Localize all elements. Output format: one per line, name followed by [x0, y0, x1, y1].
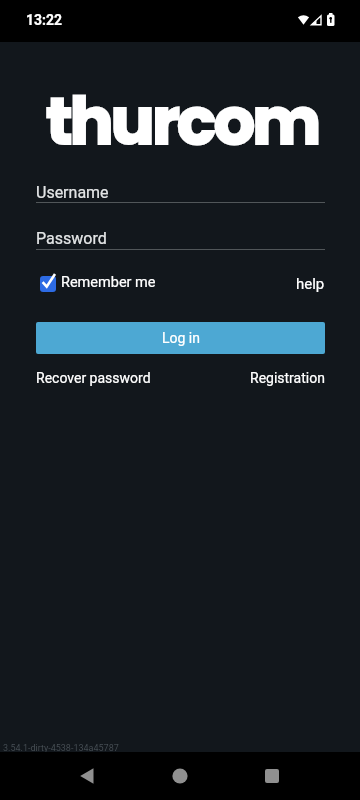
button[interactable]: [248, 752, 296, 800]
staticText: 3.54.1-dirty-4538-134a45787: [3, 743, 119, 754]
staticText: Log in: [162, 330, 200, 346]
staticText: Remember me: [61, 274, 156, 291]
staticText: 13:22: [26, 12, 63, 28]
button[interactable]: help: [296, 275, 325, 293]
button[interactable]: Registration: [250, 370, 325, 386]
staticText: Username: [36, 183, 109, 202]
button[interactable]: Recover password: [36, 370, 151, 386]
button[interactable]: [156, 752, 204, 800]
button[interactable]: Log in: [36, 322, 325, 354]
staticText: Password: [36, 229, 107, 248]
staticText: thurcom: [46, 76, 319, 167]
button[interactable]: [64, 752, 112, 800]
button[interactable]: Remember me: [36, 268, 166, 296]
